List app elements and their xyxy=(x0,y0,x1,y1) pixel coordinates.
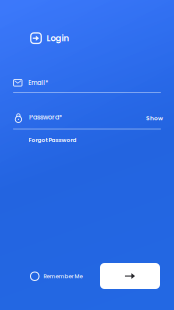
staticText: Forgot Password xyxy=(28,136,76,144)
staticText: Remember Me xyxy=(43,272,82,280)
staticText: Login xyxy=(46,32,69,44)
button[interactable]: Continue xyxy=(100,263,160,289)
button[interactable]: Forgot Password xyxy=(24,132,80,148)
button[interactable]: Remember Me xyxy=(30,268,82,284)
staticText: Show xyxy=(146,114,163,122)
staticText: Password* xyxy=(29,113,62,122)
staticText: Email* xyxy=(28,78,48,87)
button[interactable]: Show xyxy=(142,110,167,126)
